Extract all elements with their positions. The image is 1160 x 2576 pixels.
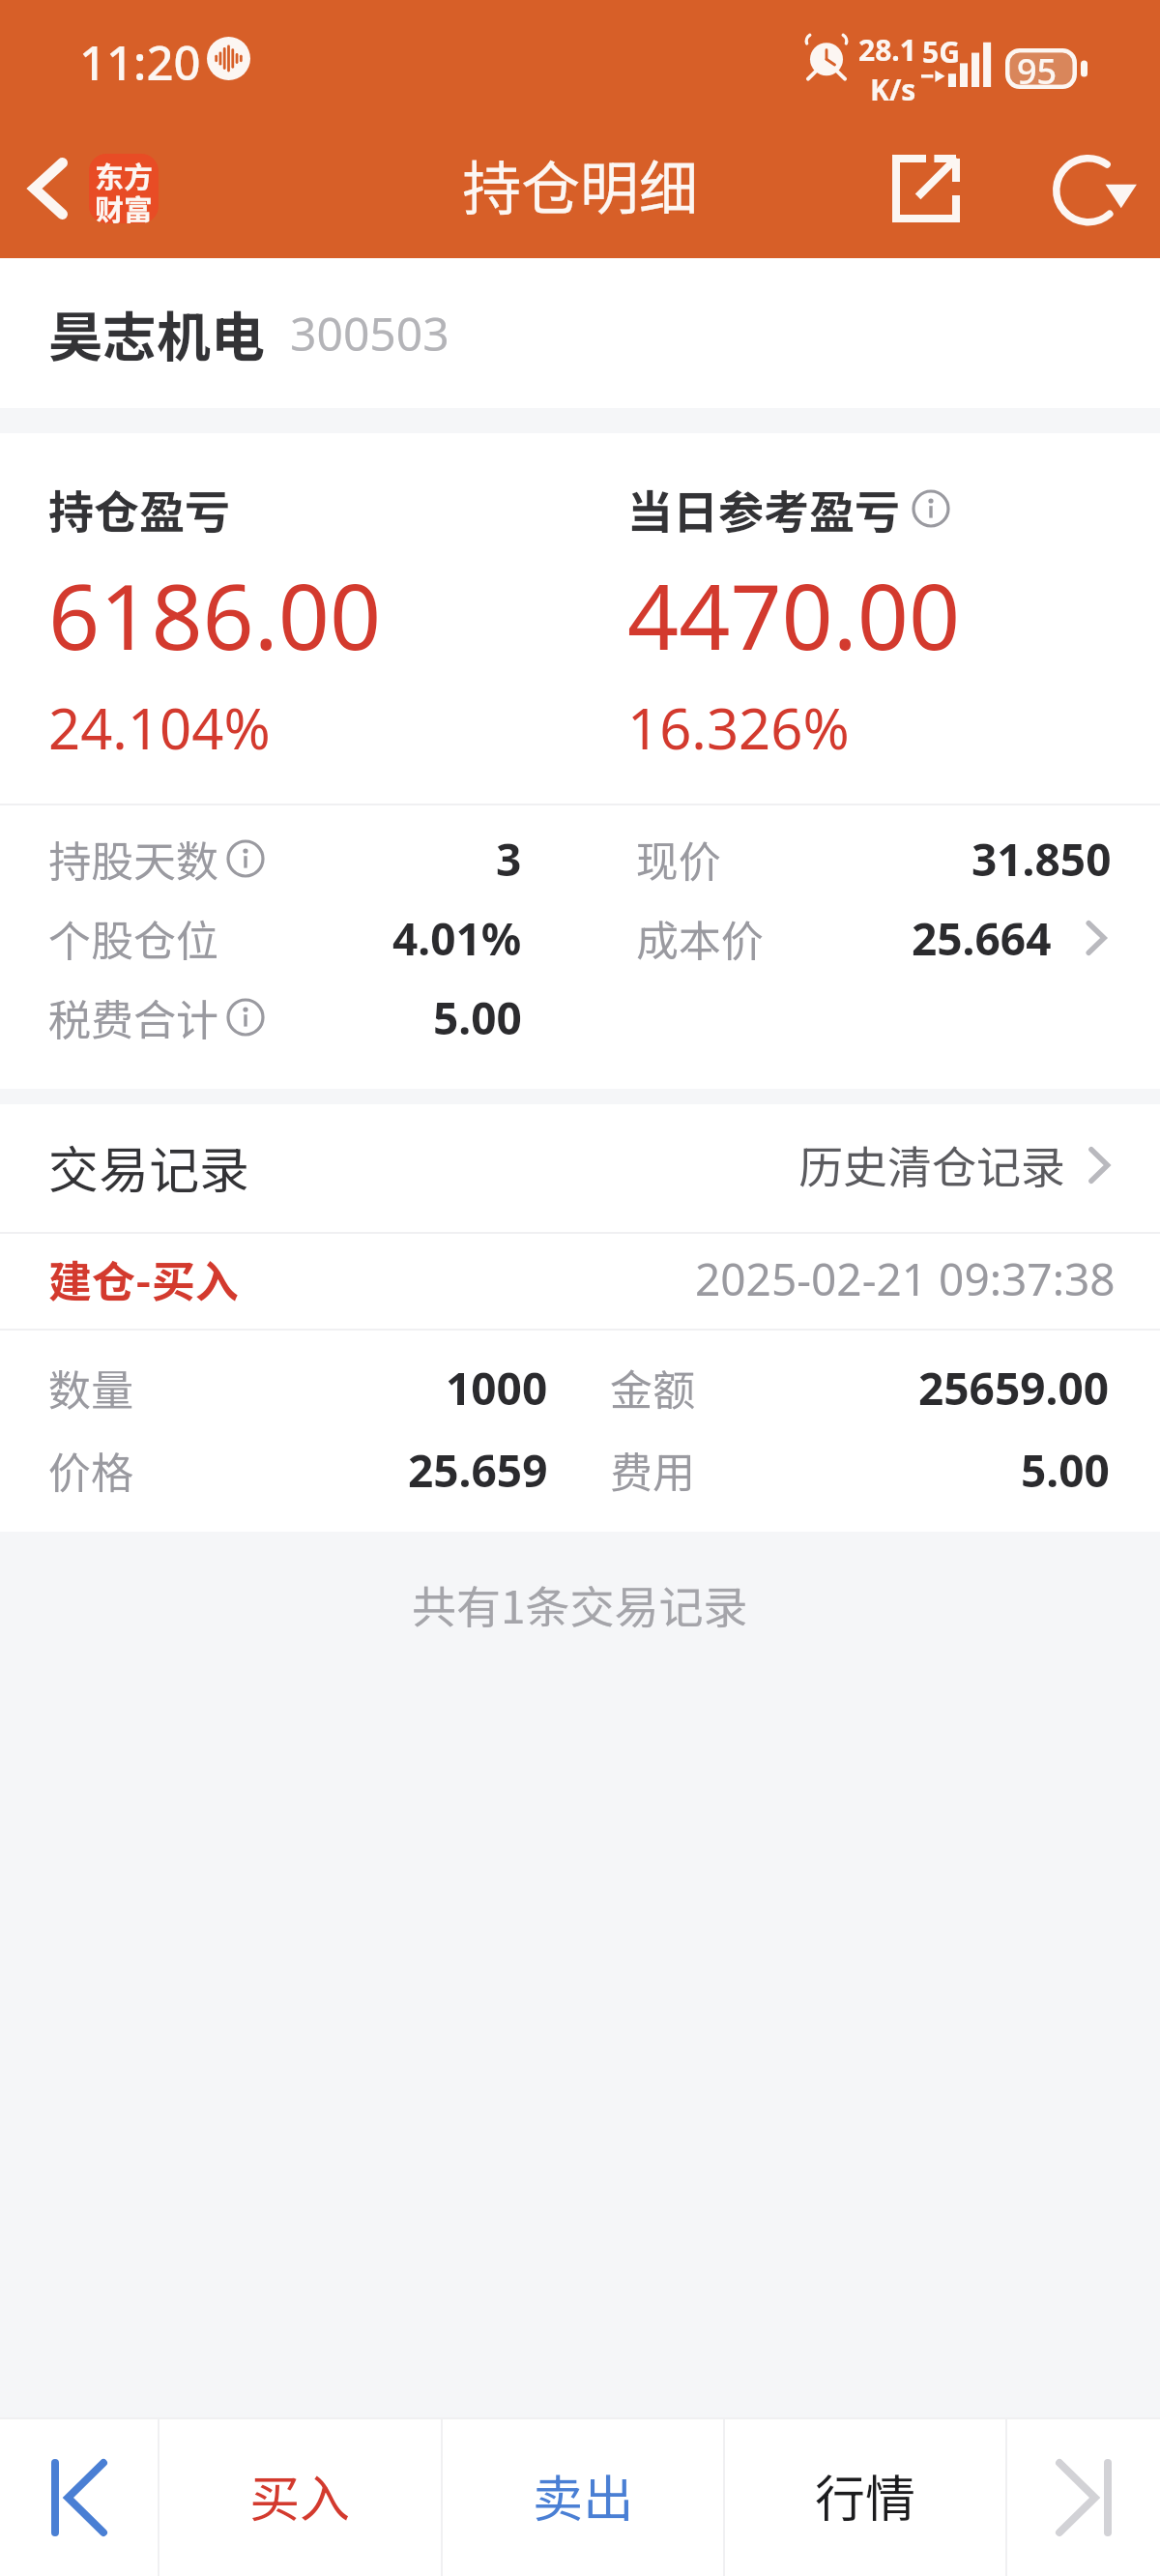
staticText: 成本价 xyxy=(636,907,764,969)
staticText: 2025-02-21 09:37:38 xyxy=(695,1248,1116,1309)
staticText: 行情 xyxy=(815,2459,916,2532)
button[interactable]: Next stock xyxy=(1007,2419,1160,2576)
button[interactable]: Share xyxy=(858,118,994,258)
button[interactable]: 历史清仓记录 xyxy=(798,1132,1116,1197)
staticText: K/s xyxy=(870,70,916,109)
staticText: 28.1 xyxy=(858,30,916,70)
staticText: 现价 xyxy=(636,828,721,890)
button[interactable]: Refresh xyxy=(1023,118,1160,258)
staticText: 5G xyxy=(922,32,960,72)
staticText: 数量 xyxy=(48,1357,133,1419)
button[interactable]: Previous stock xyxy=(0,2419,158,2576)
staticText: 昊志机电 xyxy=(48,294,265,372)
staticText: 个股仓位 xyxy=(48,907,218,969)
staticText: 买入 xyxy=(249,2459,351,2532)
staticText: 31.850 xyxy=(971,829,1112,890)
staticText: 16.326% xyxy=(627,689,850,766)
staticText: 4.01% xyxy=(392,908,522,969)
staticText: 11:20 xyxy=(79,30,201,95)
staticText: 当日参考盈亏 xyxy=(627,476,900,542)
staticText: 交易记录 xyxy=(48,1130,250,1203)
staticText: 金额 xyxy=(610,1357,695,1419)
staticText: 1000 xyxy=(446,1358,548,1419)
staticText: 历史清仓记录 xyxy=(798,1132,1065,1197)
staticText: 5.00 xyxy=(433,987,522,1048)
staticText: 价格 xyxy=(48,1439,133,1501)
staticText: 建仓-买入 xyxy=(48,1247,239,1310)
staticText: 卖出 xyxy=(533,2459,634,2532)
staticText: 4470.00 xyxy=(627,554,961,677)
staticText: 持仓明细 xyxy=(462,141,699,226)
staticText: 25.664 xyxy=(912,908,1052,969)
staticText: 费用 xyxy=(610,1439,695,1501)
staticText: 东方 财富 xyxy=(95,154,153,223)
staticText: 6186.00 xyxy=(48,554,382,677)
button[interactable]: 买入 xyxy=(159,2419,441,2576)
staticText: 24.104% xyxy=(48,689,271,766)
staticText: 3 xyxy=(496,829,522,890)
staticText: 5.00 xyxy=(1021,1440,1110,1501)
staticText: 共有1条交易记录 xyxy=(412,1572,748,1637)
button[interactable]: 建仓-买入 xyxy=(0,1234,1160,1329)
staticText: 持仓盈亏 xyxy=(48,476,230,542)
staticText: 税费合计 xyxy=(48,986,218,1048)
button[interactable]: 卖出 xyxy=(443,2419,723,2576)
staticText: 95 xyxy=(1017,47,1058,88)
staticText: 25.659 xyxy=(408,1440,548,1501)
staticText: 300503 xyxy=(290,302,449,365)
button[interactable]: 行情 xyxy=(725,2419,1005,2576)
staticText: 持股天数 xyxy=(48,828,218,890)
button[interactable]: Back xyxy=(0,118,97,258)
staticText: 25659.00 xyxy=(918,1358,1110,1419)
button[interactable]: 昊志机电 xyxy=(0,258,1160,408)
